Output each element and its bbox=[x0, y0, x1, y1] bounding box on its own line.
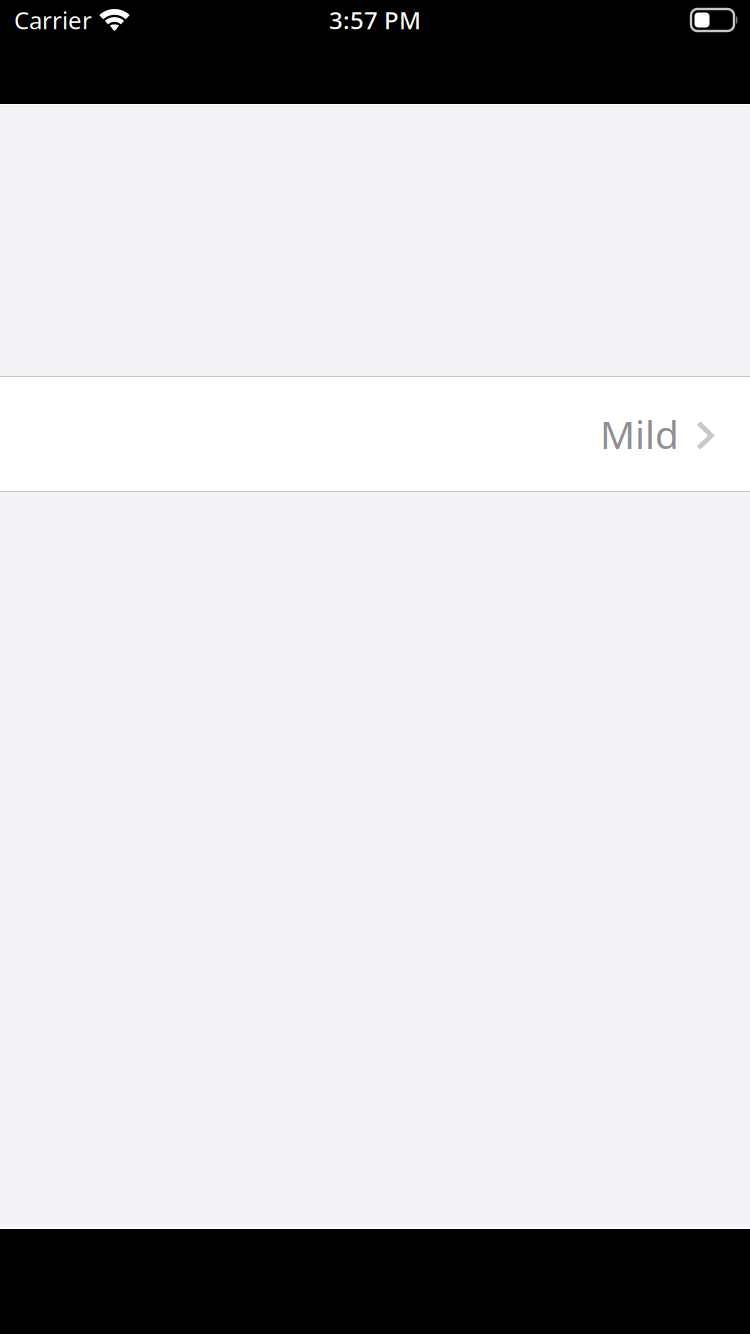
staticText: Carrier bbox=[14, 4, 92, 36]
button[interactable]: Mild bbox=[0, 377, 750, 491]
staticText: 3:57 PM bbox=[329, 4, 421, 36]
staticText: Mild bbox=[600, 408, 679, 460]
